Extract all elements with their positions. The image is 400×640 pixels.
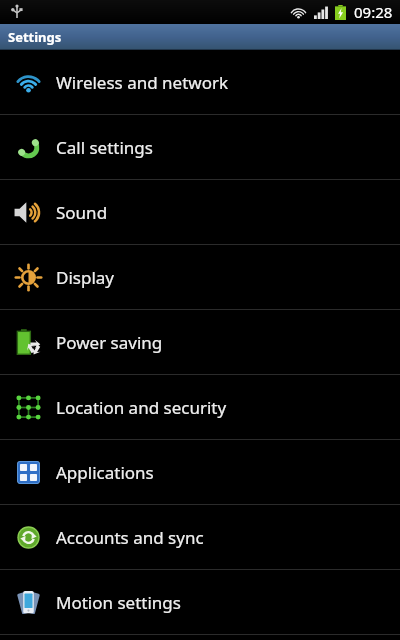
staticText: Accounts and sync: [56, 526, 204, 549]
staticText: Call settings: [56, 136, 153, 159]
button[interactable]: Location and security: [0, 375, 400, 439]
staticText: Display: [56, 266, 114, 289]
staticText: 09:28: [354, 2, 393, 22]
button[interactable]: Applications: [0, 440, 400, 504]
staticText: Wireless and network: [56, 71, 229, 94]
staticText: Applications: [56, 461, 154, 484]
staticText: Location and security: [56, 396, 227, 419]
button[interactable]: Motion settings: [0, 570, 400, 634]
button[interactable]: Call settings: [0, 115, 400, 179]
button[interactable]: Sound: [0, 180, 400, 244]
staticText: Settings: [8, 28, 62, 46]
button[interactable]: Power saving: [0, 310, 400, 374]
staticText: Motion settings: [56, 591, 181, 614]
staticText: Sound: [56, 201, 108, 224]
button[interactable]: Accounts and sync: [0, 505, 400, 569]
staticText: Power saving: [56, 331, 163, 354]
button[interactable]: Display: [0, 245, 400, 309]
button[interactable]: Wireless and network: [0, 50, 400, 114]
